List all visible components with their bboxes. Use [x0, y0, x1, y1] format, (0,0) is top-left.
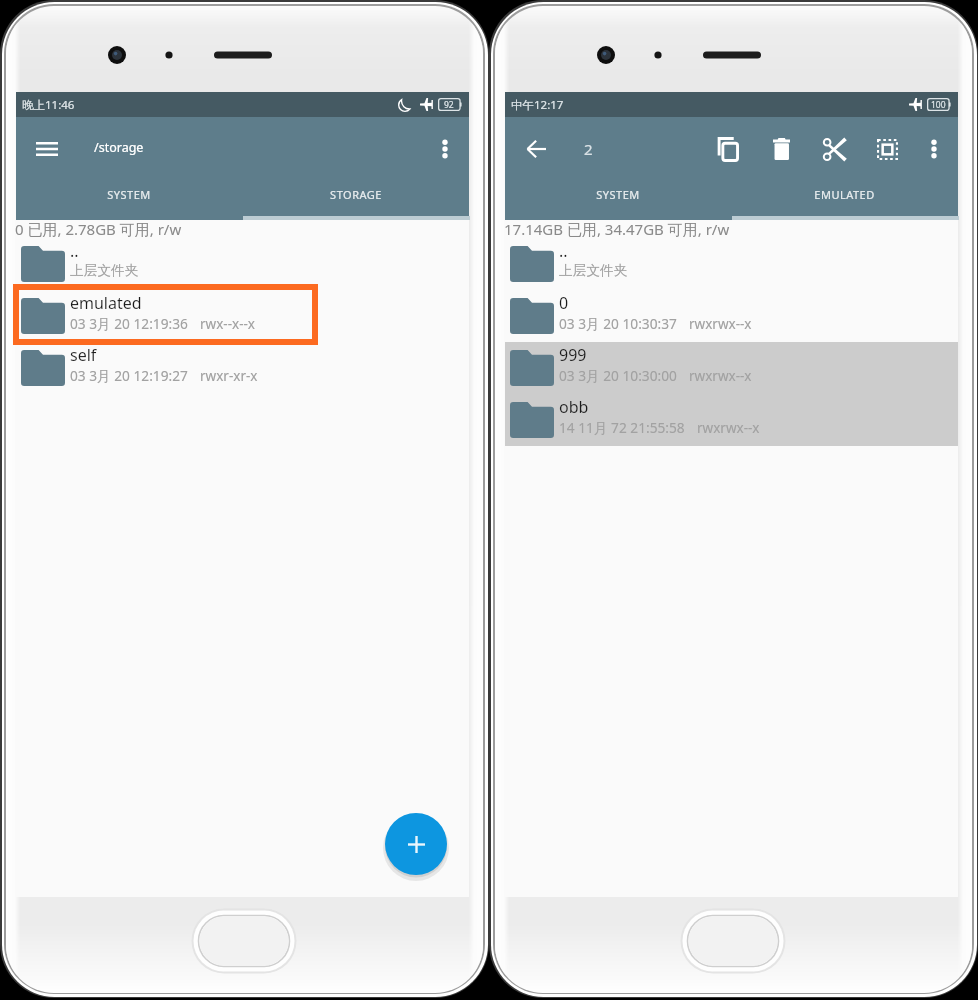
staticText: 0 已用, 2.78GB 可用, r/w — [15, 219, 182, 237]
staticText: obb — [559, 396, 589, 418]
staticText: 0 — [559, 292, 569, 314]
button[interactable]: .. — [505, 238, 958, 290]
staticText: STORAGE — [330, 187, 382, 202]
button[interactable]: SYSTEM — [505, 174, 731, 220]
staticText: EMULATED — [814, 187, 875, 202]
button[interactable]: self — [16, 342, 469, 394]
button[interactable]: More options — [423, 127, 467, 171]
staticText: 100 — [931, 99, 946, 111]
staticText: 17.14GB 已用, 34.47GB 可用, r/w — [504, 219, 730, 237]
button[interactable]: obb — [505, 394, 958, 446]
staticText: emulated — [70, 292, 142, 314]
button[interactable]: .. — [16, 238, 469, 290]
staticText: 14 11月 72 21:55:58 — [559, 418, 685, 437]
button[interactable]: Add — [385, 813, 447, 875]
staticText: .. — [559, 240, 568, 262]
staticText: 上层文件夹 — [70, 262, 139, 279]
staticText: /storage — [94, 139, 144, 156]
staticText: 03 3月 20 10:30:37 — [559, 314, 677, 333]
staticText: SYSTEM — [107, 187, 151, 202]
button[interactable]: Back — [514, 127, 558, 171]
button[interactable]: Select all — [864, 126, 910, 172]
button[interactable]: SYSTEM — [16, 174, 242, 220]
staticText: rwxrwx--x — [689, 315, 752, 333]
button[interactable]: 0 — [505, 290, 958, 342]
staticText: rwx--x--x — [200, 315, 255, 333]
staticText: 03 3月 20 12:19:27 — [70, 366, 188, 385]
button[interactable]: More options — [912, 127, 956, 171]
button[interactable]: emulated — [16, 290, 469, 342]
button[interactable]: Navigation menu — [25, 127, 69, 171]
button[interactable]: Cut — [811, 126, 857, 172]
button[interactable]: Delete — [758, 126, 804, 172]
staticText: 92 — [444, 99, 454, 111]
staticText: SYSTEM — [596, 187, 640, 202]
button[interactable]: 999 — [505, 342, 958, 394]
staticText: 中午12:17 — [511, 97, 564, 113]
staticText: rwxrwx--x — [697, 419, 760, 437]
button[interactable]: STORAGE — [242, 174, 469, 220]
staticText: 999 — [559, 344, 587, 366]
staticText: rwxrwx--x — [689, 367, 752, 385]
button[interactable]: Copy — [705, 126, 751, 172]
staticText: 上层文件夹 — [559, 262, 628, 279]
staticText: 03 3月 20 10:30:00 — [559, 366, 677, 385]
staticText: self — [70, 344, 97, 366]
staticText: 晚上11:46 — [22, 97, 75, 113]
button[interactable]: EMULATED — [731, 174, 958, 220]
staticText: 2 — [584, 139, 593, 159]
staticText: 03 3月 20 12:19:36 — [70, 314, 188, 333]
staticText: .. — [70, 240, 79, 262]
staticText: rwxr-xr-x — [200, 367, 258, 385]
